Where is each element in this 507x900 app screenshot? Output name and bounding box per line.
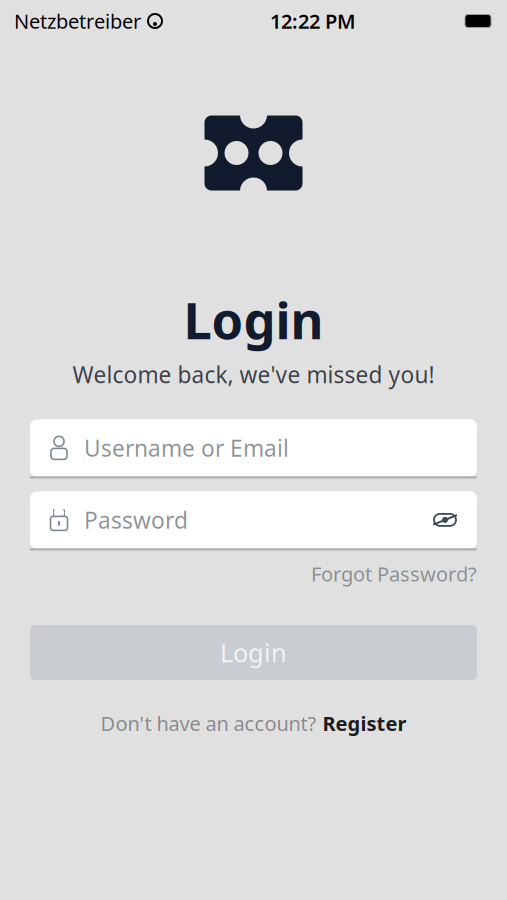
staticText: Login: [220, 636, 287, 669]
button[interactable]: Password: [30, 491, 477, 550]
staticText: Forgot Password?: [311, 560, 477, 587]
button[interactable]: Username or Email: [30, 419, 477, 478]
staticText: Don't have an account?: [100, 710, 316, 736]
staticText: Login: [183, 286, 323, 353]
button[interactable]: Forgot Password?: [311, 560, 477, 587]
staticText: Username or Email: [84, 433, 289, 463]
staticText: Register: [322, 710, 406, 736]
staticText: Welcome back, we've missed you!: [72, 359, 434, 389]
button[interactable]: Login: [30, 625, 477, 680]
staticText: 12:22 PM: [270, 8, 356, 34]
staticText: Netzbetreiber: [14, 8, 141, 34]
staticText: Password: [84, 505, 188, 535]
button[interactable]: Don't have an account?: [100, 710, 406, 736]
